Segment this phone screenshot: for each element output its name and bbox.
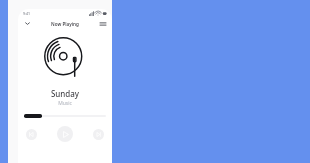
button[interactable]: Queue — [98, 19, 107, 28]
button[interactable]: Play — [57, 126, 73, 142]
staticText: 9:41 — [23, 11, 30, 16]
button[interactable]: Previous — [26, 129, 37, 140]
staticText: Music — [18, 100, 112, 107]
button[interactable]: Next — [93, 129, 104, 140]
staticText: Now Playing — [32, 21, 98, 27]
staticText: Sunday — [18, 88, 112, 99]
button[interactable]: Seek — [24, 113, 106, 118]
button[interactable]: Collapse — [23, 19, 32, 28]
